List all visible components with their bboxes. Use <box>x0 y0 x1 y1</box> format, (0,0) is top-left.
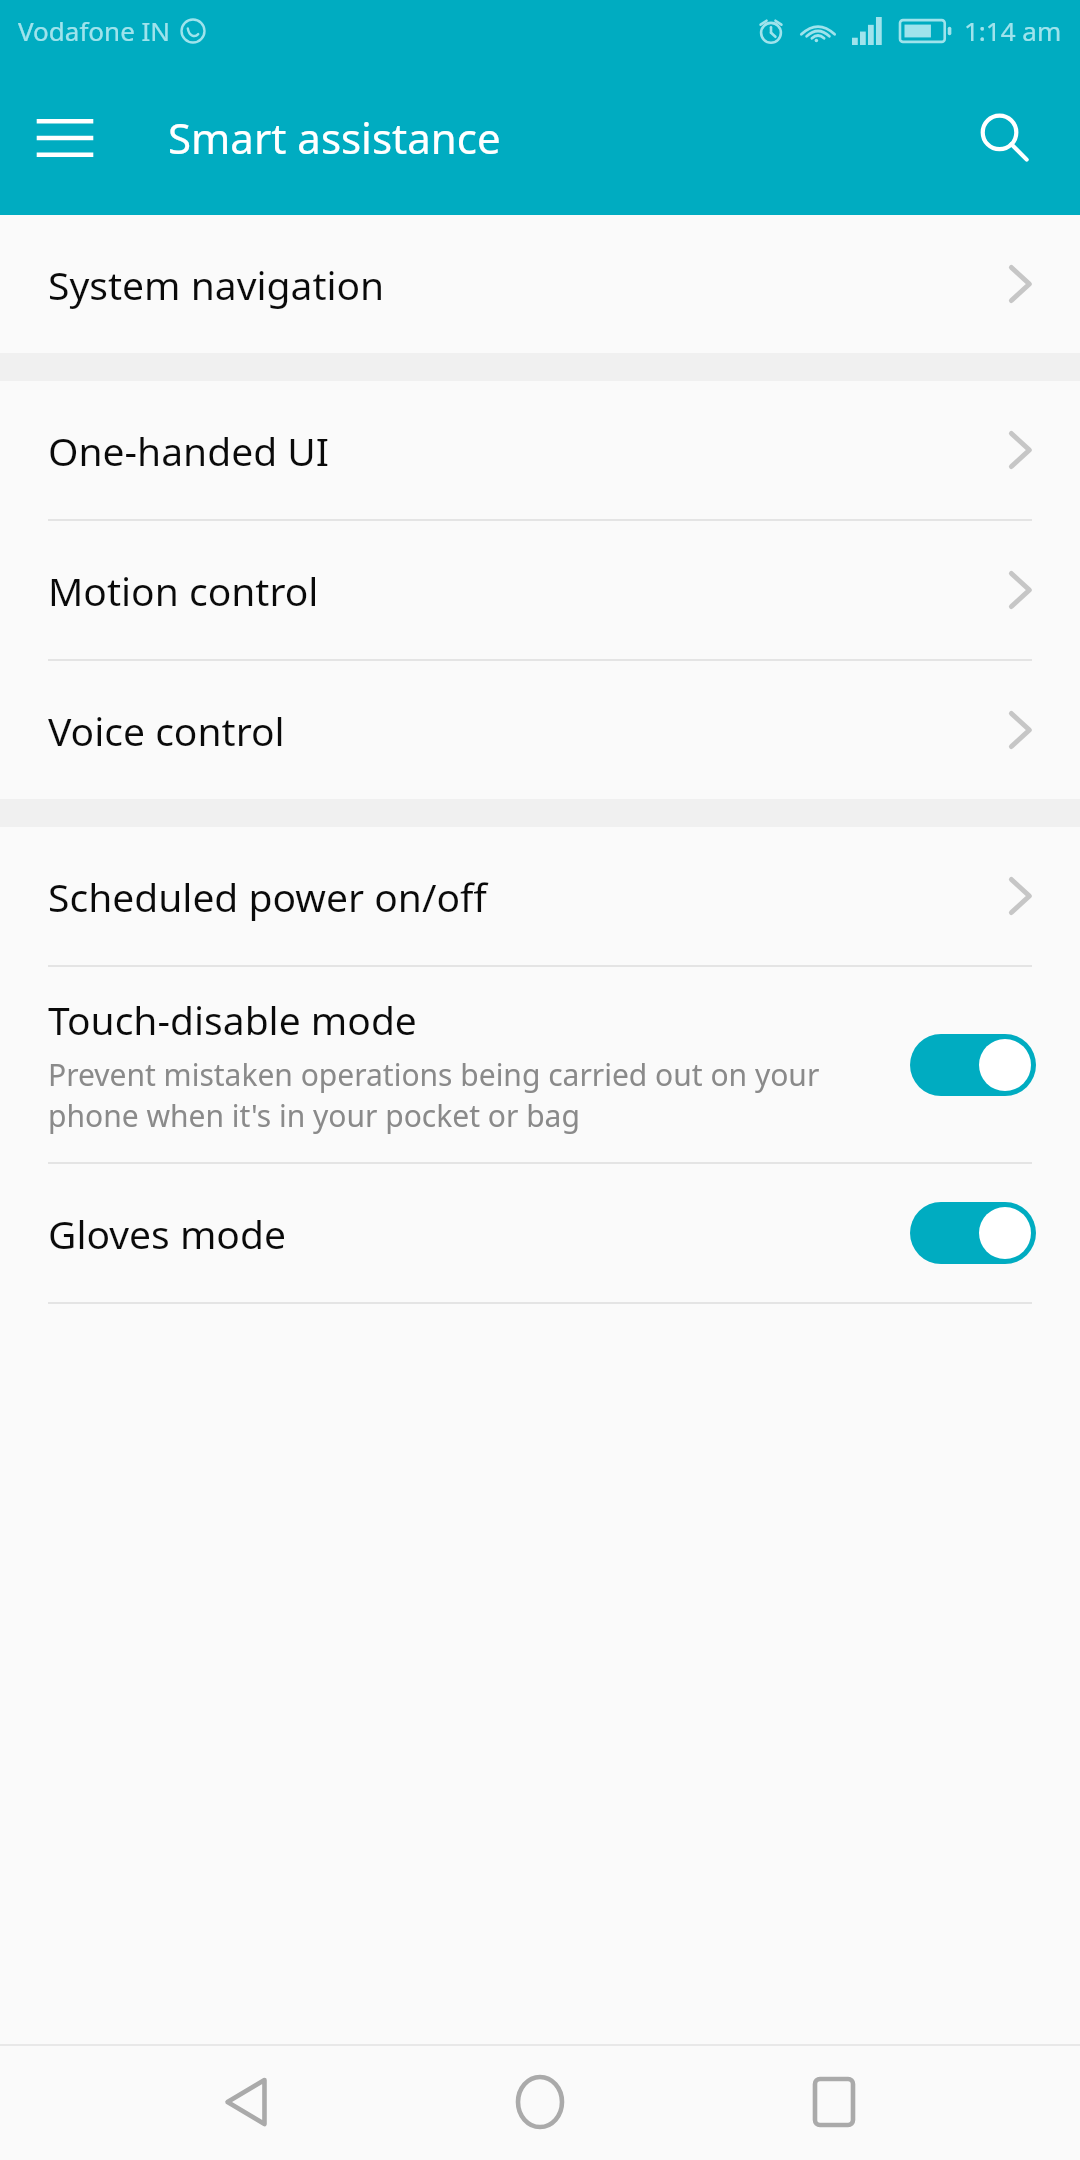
staticText: Smart assistance <box>168 109 501 166</box>
button[interactable]: Recents <box>786 2054 882 2150</box>
button[interactable]: One-handed UI <box>0 381 1080 519</box>
button[interactable]: Toggle <box>910 1202 1036 1264</box>
staticText: Vodafone IN <box>18 13 171 48</box>
button[interactable]: Back <box>198 2054 294 2150</box>
button[interactable]: Scheduled power on/off <box>0 827 1080 965</box>
button[interactable]: Motion control <box>0 521 1080 659</box>
button[interactable]: Gloves mode <box>0 1164 1080 1302</box>
button[interactable]: Toggle <box>910 1034 1036 1096</box>
button[interactable]: System navigation <box>0 215 1080 353</box>
button[interactable]: Home <box>492 2054 588 2150</box>
staticText: Prevent mistaken operations being carrie… <box>48 1054 820 1136</box>
staticText: One-handed UI <box>48 424 1006 477</box>
staticText: System navigation <box>48 258 1006 311</box>
staticText: Voice control <box>48 704 1006 757</box>
button[interactable]: Touch-disable mode <box>0 967 1080 1162</box>
staticText: 1:14 am <box>964 13 1062 48</box>
staticText: Scheduled power on/off <box>48 870 1006 923</box>
button[interactable]: Menu <box>34 107 96 169</box>
button[interactable]: Search <box>966 100 1042 176</box>
staticText: Motion control <box>48 564 1006 617</box>
staticText: Gloves mode <box>48 1207 286 1260</box>
staticText: Touch-disable mode <box>48 993 417 1046</box>
button[interactable]: Voice control <box>0 661 1080 799</box>
